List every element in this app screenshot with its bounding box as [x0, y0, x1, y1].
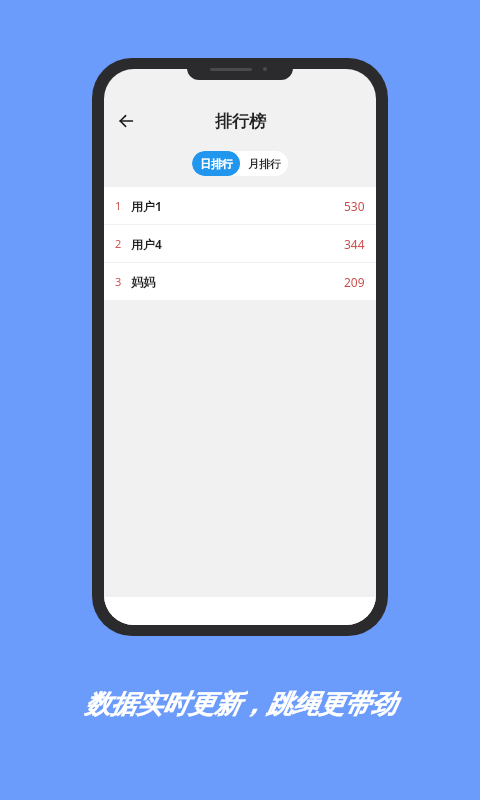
button[interactable]: Back — [108, 103, 144, 139]
staticText: 月排行 — [248, 157, 281, 171]
staticText: 530 — [344, 198, 365, 214]
staticText: 344 — [344, 236, 365, 252]
button[interactable]: 3 — [104, 263, 376, 300]
staticText: 数据实时更新，跳绳更带劲 — [0, 688, 480, 721]
button[interactable]: 2 — [104, 225, 376, 262]
staticText: 1 — [115, 198, 122, 213]
button[interactable]: 日排行 — [192, 151, 240, 176]
button[interactable]: 1 — [104, 187, 376, 224]
staticText: 排行榜 — [215, 111, 266, 132]
staticText: 3 — [115, 274, 122, 289]
staticText: 用户4 — [131, 236, 162, 252]
staticText: 日排行 — [200, 157, 233, 171]
staticText: 209 — [344, 274, 365, 290]
staticText: 2 — [115, 236, 122, 251]
button[interactable]: 月排行 — [240, 151, 288, 176]
staticText: 妈妈 — [131, 274, 155, 289]
staticText: 用户1 — [131, 198, 162, 214]
